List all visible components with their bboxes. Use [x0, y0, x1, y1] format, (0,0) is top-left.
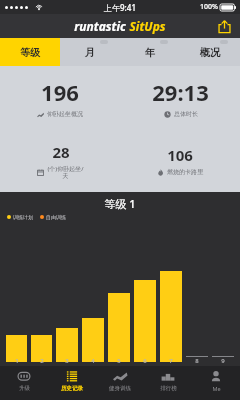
staticText: 仰卧起坐概况 [47, 110, 83, 118]
button[interactable]: 月 [60, 38, 120, 66]
staticText: 训练计划 [13, 214, 33, 220]
staticText: 6 [143, 357, 147, 365]
staticText: 1 [15, 357, 19, 365]
staticText: runtastic [74, 18, 126, 34]
staticText: 100% [200, 2, 218, 12]
button[interactable]: 年 [120, 38, 180, 66]
button[interactable]: 历史记录 [48, 366, 96, 400]
staticText: 上午9:41 [104, 2, 136, 13]
staticText: 3 [65, 357, 69, 365]
staticText: 概况 [200, 46, 220, 59]
button[interactable]: 28 [0, 129, 120, 192]
button[interactable]: 概况 [180, 38, 240, 66]
staticText: 排行榜 [160, 385, 177, 392]
staticText: 7 [169, 357, 173, 365]
staticText: 2 [40, 357, 44, 365]
staticText: (个)仰卧起坐/ 天 [47, 165, 84, 180]
staticText: 106 [167, 145, 193, 165]
button[interactable]: 健身训练 [96, 366, 144, 400]
staticText: 8 [195, 357, 199, 365]
staticText: 4 [91, 357, 95, 365]
button[interactable]: 排行榜 [144, 366, 192, 400]
button[interactable]: 升级 [0, 366, 48, 400]
button[interactable]: Share [214, 16, 234, 36]
staticText: 5 [117, 357, 121, 365]
staticText: SitUps [129, 18, 166, 34]
staticText: 28 [52, 142, 70, 162]
staticText: 月 [85, 46, 95, 59]
button[interactable]: Me [192, 366, 240, 400]
staticText: 年 [145, 46, 155, 59]
staticText: 29:13 [152, 77, 209, 107]
staticText: 健身训练 [109, 385, 131, 392]
staticText: 历史记录 [61, 385, 83, 392]
button[interactable]: 29:13 [120, 66, 240, 129]
staticText: 等级 1 [104, 196, 136, 211]
staticText: 9 [221, 357, 225, 365]
button[interactable]: 106 [120, 129, 240, 192]
button[interactable]: 等级 [0, 38, 60, 66]
button[interactable]: 196 [0, 66, 120, 129]
staticText: 燃烧的卡路里 [167, 168, 203, 176]
staticText: 自由训练 [46, 214, 66, 220]
staticText: 总体时长 [174, 110, 198, 118]
staticText: 等级 [20, 46, 40, 59]
staticText: 升级 [19, 385, 30, 392]
staticText: 196 [41, 77, 79, 107]
staticText: Me [212, 385, 221, 392]
